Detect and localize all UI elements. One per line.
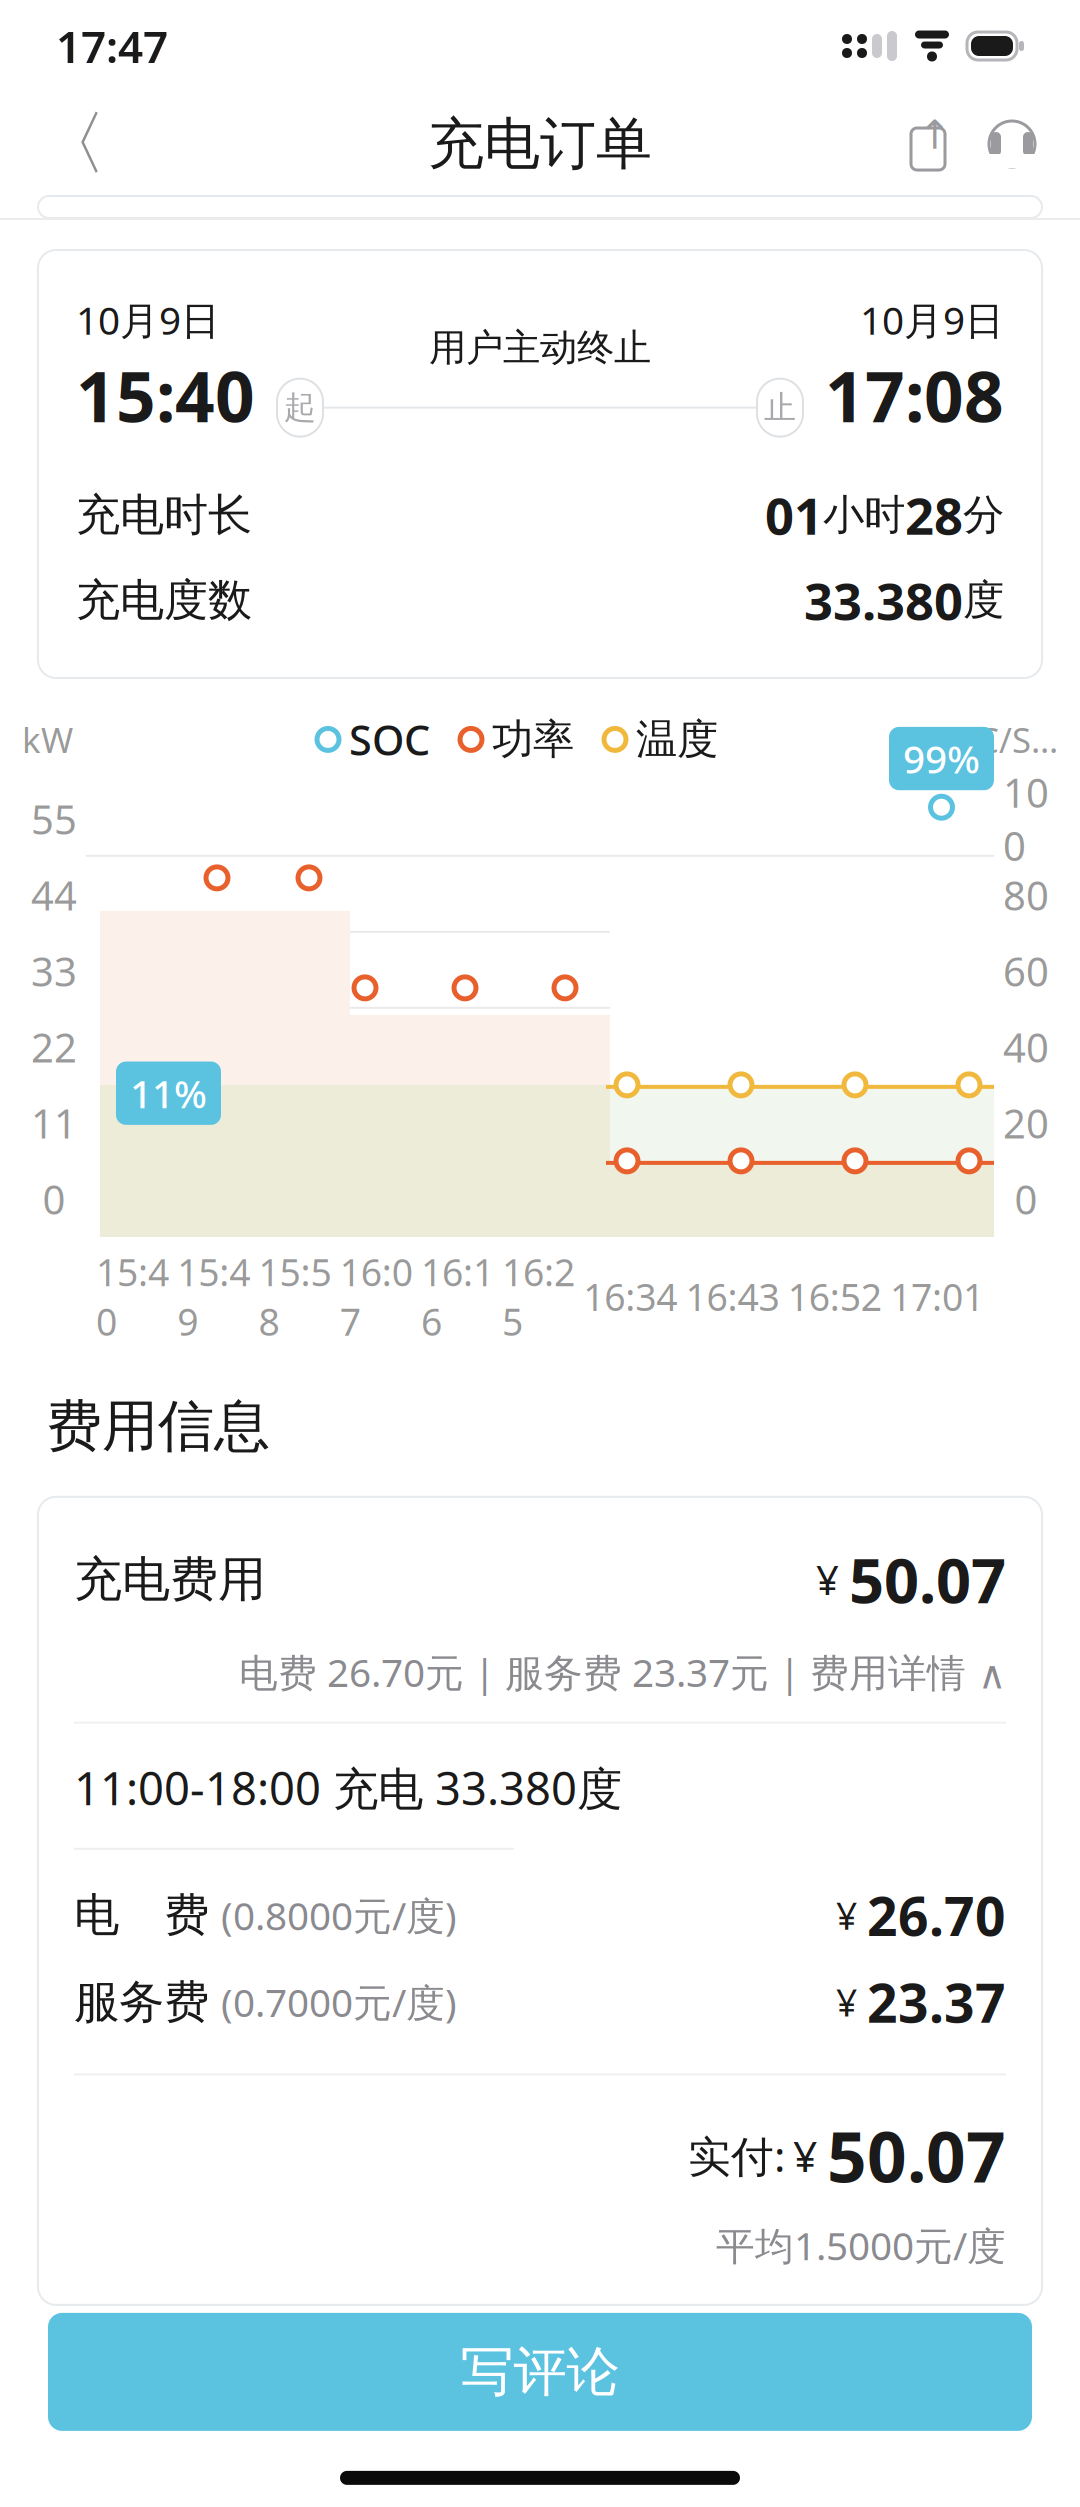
staticText: ↑: [918, 112, 952, 158]
staticText: 温度: [636, 714, 718, 765]
staticText: 23.37: [867, 1967, 1006, 2037]
staticText: 80: [1003, 868, 1049, 921]
staticText: 26.70: [867, 1880, 1006, 1951]
staticText: 60: [1003, 944, 1049, 997]
staticText: 17:08: [825, 349, 1004, 441]
staticText: 100: [1003, 766, 1049, 872]
staticText: 22: [31, 1020, 77, 1073]
staticText: 16:52: [788, 1272, 882, 1321]
staticText: 止: [764, 388, 796, 427]
staticText: SOC: [349, 712, 430, 767]
staticText: 40: [1003, 1020, 1049, 1073]
staticText: 16:16: [421, 1247, 494, 1346]
staticText: 17:47: [56, 17, 168, 75]
staticText: 17:01: [890, 1272, 984, 1321]
staticText: 50.07: [827, 2109, 1006, 2202]
staticText: 33: [31, 944, 77, 997]
staticText: 20: [1003, 1096, 1049, 1149]
staticText: 15:40: [96, 1247, 169, 1346]
staticText: ¥: [793, 2127, 817, 2184]
staticText: 15:49: [177, 1247, 250, 1346]
staticText: ¥: [836, 1977, 857, 2027]
staticText: 11: [31, 1096, 77, 1149]
button[interactable]: 写评论: [48, 2313, 1032, 2431]
staticText: 度: [963, 575, 1004, 626]
staticText: 11%: [130, 1067, 207, 1119]
staticText: °C/S...: [962, 716, 1058, 762]
button[interactable]: 电费 26.70元 | 服务费 23.37元 | 费用详情 ∧: [74, 1620, 1006, 1722]
button[interactable]: Customer service: [970, 98, 1054, 190]
staticText: 15:58: [258, 1247, 331, 1346]
staticText: 〈: [37, 101, 106, 187]
staticText: 10月9日: [76, 294, 220, 345]
staticText: 平均1.5000元/度: [716, 2219, 1006, 2271]
staticText: 电费 26.70元 | 服务费 23.37元 | 费用详情 ∧: [239, 1646, 1006, 1698]
staticText: 28: [905, 481, 963, 549]
staticText: 实付:: [688, 2127, 785, 2184]
button[interactable]: Share: [886, 98, 970, 190]
staticText: 0: [1014, 1172, 1037, 1225]
staticText: (0.8000元/度): [221, 1889, 457, 1941]
staticText: 充电费用: [74, 1550, 266, 1609]
staticText: 16:34: [583, 1272, 677, 1321]
staticText: 10月9日: [860, 294, 1004, 345]
staticText: 充电时长: [76, 488, 252, 542]
staticText: 15:40: [76, 349, 255, 441]
staticText: 费用信息: [46, 1392, 270, 1461]
staticText: 充电订单: [428, 110, 652, 178]
staticText: 01: [765, 481, 823, 549]
staticText: 33.380: [804, 567, 963, 634]
staticText: 写评论: [460, 2339, 619, 2405]
staticText: 起: [284, 388, 316, 427]
staticText: 99%: [903, 733, 980, 784]
staticText: (0.7000元/度): [221, 1976, 457, 2028]
staticText: 55: [31, 792, 77, 845]
staticText: ¥: [836, 1890, 857, 1940]
staticText: 11:00-18:00 充电 33.380度: [74, 1758, 622, 1818]
staticText: 功率: [492, 714, 574, 765]
staticText: 小时: [823, 490, 905, 540]
button[interactable]: Back: [26, 98, 118, 190]
staticText: 充电度数: [76, 573, 252, 627]
staticText: 分: [963, 490, 1004, 540]
staticText: 电 费: [74, 1887, 209, 1943]
staticText: 44: [31, 868, 77, 921]
staticText: 0: [42, 1172, 65, 1225]
staticText: kW: [22, 716, 73, 762]
staticText: 服务费: [74, 1974, 209, 2030]
staticText: 16:07: [340, 1247, 413, 1346]
staticText: 16:25: [502, 1247, 575, 1346]
staticText: 用户主动终止: [429, 325, 651, 371]
staticText: ¥: [816, 1553, 839, 1606]
staticText: 16:43: [686, 1272, 780, 1321]
staticText: 50.07: [849, 1539, 1006, 1620]
